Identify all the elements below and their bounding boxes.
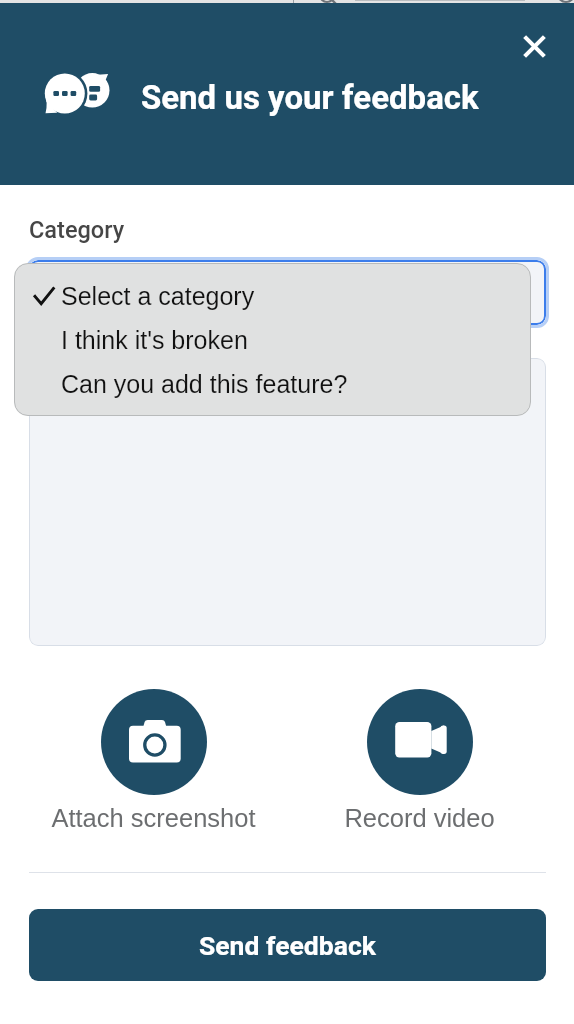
button[interactable]: Category [29, 260, 546, 325]
button[interactable]: Send feedback [29, 909, 546, 981]
button[interactable]: Record video [299, 689, 540, 832]
staticText: Send us your feedback [141, 78, 479, 117]
staticText: Category [29, 216, 125, 244]
button[interactable]: Attach screenshot [33, 689, 274, 832]
button[interactable]: I think it's broken [14, 318, 531, 362]
staticText: Attach screenshot [51, 804, 256, 832]
staticText: I think it's broken [61, 326, 248, 354]
button[interactable]: Can you add this feature? [14, 362, 531, 406]
staticText: Can you add this feature? [61, 370, 348, 398]
button[interactable]: Close [507, 19, 561, 73]
button[interactable]: Select a category [14, 274, 531, 318]
other: Attach screenshot [101, 689, 207, 795]
staticText: Send feedback [199, 930, 376, 961]
staticText: Record video [344, 804, 495, 832]
button[interactable]: Describe your feedback [29, 358, 546, 646]
other: Record video [367, 689, 473, 795]
staticText: Select a category [61, 282, 255, 310]
